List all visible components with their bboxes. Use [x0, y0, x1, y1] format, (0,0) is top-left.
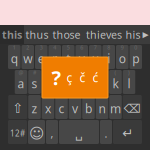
- button[interactable]: those: [50, 25, 83, 44]
- button[interactable]: [28, 120, 45, 144]
- staticText: ⇧: [12, 101, 23, 116]
- staticText: v: [72, 100, 78, 116]
- staticText: o: [119, 50, 126, 66]
- button[interactable]: [69, 95, 81, 119]
- button[interactable]: his: [125, 25, 141, 44]
- button[interactable]: (: [109, 70, 122, 94]
- button[interactable]: $: [42, 70, 54, 94]
- staticText: [115, 94, 116, 101]
- button[interactable]: [8, 95, 27, 119]
- staticText: 3: [40, 44, 43, 51]
- button[interactable]: 4: [48, 45, 61, 69]
- staticText: p: [132, 50, 139, 66]
- staticText: w: [23, 50, 32, 66]
- staticText: 2: [26, 44, 29, 51]
- staticText: his: [125, 27, 140, 42]
- staticText: [17, 94, 18, 101]
- button[interactable]: @: [15, 70, 27, 94]
- staticText: @: [18, 69, 23, 76]
- staticText: ☺: [29, 125, 44, 142]
- button[interactable]: %: [55, 70, 68, 94]
- button[interactable]: +: [96, 70, 108, 94]
- staticText: a: [17, 75, 24, 91]
- button[interactable]: -: [82, 70, 95, 94]
- staticText: ␣: [75, 127, 83, 140]
- staticText: z: [31, 100, 37, 116]
- button[interactable]: [82, 95, 95, 119]
- staticText: ↵: [122, 126, 133, 141]
- button[interactable]: ): [123, 70, 135, 94]
- button[interactable]: [113, 120, 142, 144]
- staticText: u: [92, 50, 99, 66]
- button[interactable]: [96, 95, 108, 119]
- button[interactable]: 6: [75, 45, 88, 69]
- staticText: 12#: [10, 128, 25, 139]
- staticText: c: [58, 100, 64, 116]
- button[interactable]: More suggestions: [141, 25, 150, 44]
- staticText: 6: [80, 44, 83, 51]
- staticText: [34, 94, 35, 101]
- staticText: 4: [53, 44, 56, 51]
- staticText: e: [38, 50, 45, 66]
- staticText: [74, 94, 75, 101]
- staticText: thieves: [86, 27, 122, 42]
- staticText: ⌫: [124, 102, 141, 115]
- staticText: thus: [25, 27, 48, 42]
- button[interactable]: 2: [21, 45, 34, 69]
- staticText: i: [107, 50, 110, 66]
- staticText: ,: [50, 126, 53, 141]
- button[interactable]: [46, 120, 58, 144]
- staticText: ): [128, 69, 130, 76]
- button[interactable]: [59, 120, 99, 144]
- staticText: ?: [51, 64, 61, 91]
- staticText: t: [66, 50, 70, 66]
- button[interactable]: 8: [102, 45, 115, 69]
- button[interactable]: &: [69, 70, 81, 94]
- button[interactable]: 9: [116, 45, 128, 69]
- button[interactable]: [100, 120, 112, 144]
- staticText: s: [31, 75, 37, 91]
- staticText: ▶: [142, 30, 148, 39]
- button[interactable]: 3: [35, 45, 47, 69]
- button[interactable]: [28, 95, 41, 119]
- button[interactable]: 5: [62, 45, 74, 69]
- button[interactable]: [42, 95, 54, 119]
- staticText: this: [2, 27, 22, 42]
- button[interactable]: [123, 95, 142, 119]
- button[interactable]: #: [28, 70, 41, 94]
- staticText: ć: [92, 69, 98, 85]
- button[interactable]: 0: [129, 45, 142, 69]
- staticText: ç: [66, 69, 72, 85]
- staticText: m: [110, 100, 121, 116]
- staticText: b: [85, 100, 92, 116]
- staticText: k: [112, 75, 118, 91]
- staticText: 1: [13, 44, 16, 51]
- staticText: [36, 119, 37, 126]
- staticText: [88, 94, 89, 101]
- staticText: .: [104, 126, 107, 141]
- staticText: r: [52, 50, 57, 66]
- staticText: y: [79, 50, 85, 66]
- button[interactable]: 1: [8, 45, 20, 69]
- button[interactable]: thus: [24, 25, 50, 44]
- staticText: [127, 119, 128, 126]
- button[interactable]: 7: [89, 45, 101, 69]
- button[interactable]: this: [0, 25, 24, 44]
- staticText: 8: [107, 44, 110, 51]
- button[interactable]: [109, 95, 122, 119]
- staticText: [61, 94, 62, 101]
- button[interactable]: thieves: [83, 25, 125, 44]
- staticText: q: [11, 50, 18, 66]
- button[interactable]: [8, 120, 27, 144]
- staticText: 0: [134, 44, 137, 51]
- button[interactable]: [55, 95, 68, 119]
